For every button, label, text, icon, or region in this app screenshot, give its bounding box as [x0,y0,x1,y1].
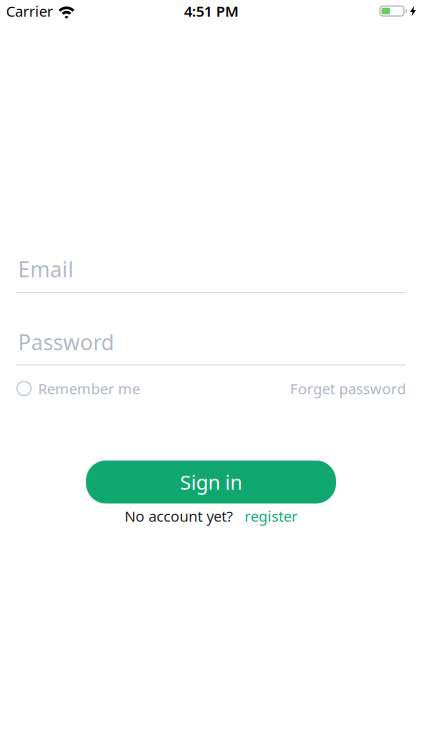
button[interactable]: Forget password [290,379,406,398]
staticText: Password [18,328,114,356]
staticText: Remember me [38,379,140,398]
staticText: Carrier [6,1,53,21]
button[interactable]: register [244,506,297,526]
staticText: Sign in [180,469,242,495]
staticText: Forget password [290,379,406,398]
button[interactable]: Sign in [86,460,336,503]
staticText: Email [18,255,74,283]
staticText: No account yet? [124,506,232,526]
staticText: register [244,506,297,526]
button[interactable]: Remember me [17,379,140,398]
staticText: 4:51 PM [184,1,239,21]
